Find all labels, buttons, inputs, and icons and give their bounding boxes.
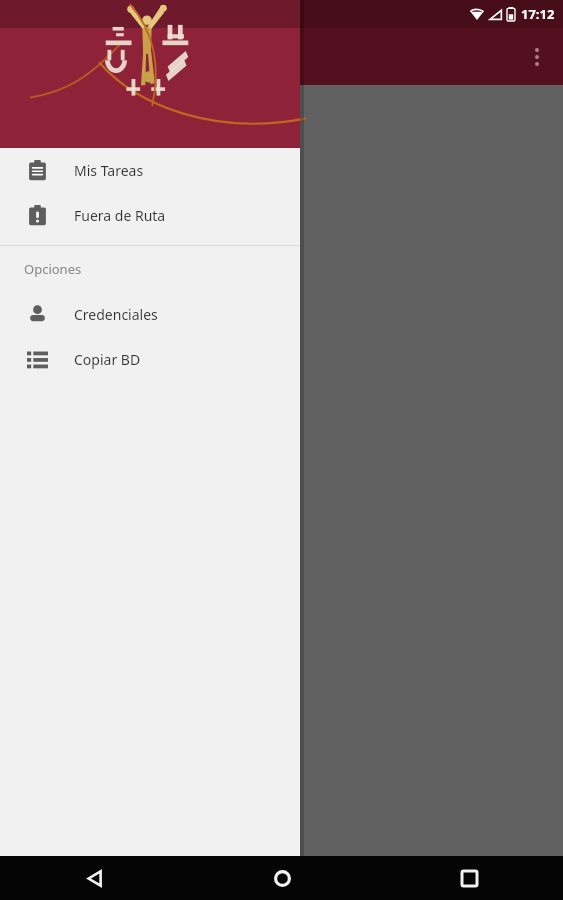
button[interactable]: More options (513, 33, 561, 81)
button[interactable]: Recents (445, 856, 493, 900)
button[interactable]: Back (70, 856, 118, 900)
staticText: Copiar BD (74, 350, 141, 369)
staticText: Opciones (24, 260, 82, 278)
staticText: Credenciales (74, 305, 158, 324)
button[interactable]: Credenciales (0, 292, 300, 337)
button[interactable]: Home (258, 856, 306, 900)
button[interactable]: Copiar BD (0, 337, 300, 382)
staticText: 17:12 (521, 5, 555, 23)
button[interactable]: Mis Tareas (0, 148, 300, 193)
staticText: Fuera de Ruta (74, 206, 166, 225)
staticText: Mis Tareas (74, 161, 144, 180)
button[interactable]: Fuera de Ruta (0, 193, 300, 238)
